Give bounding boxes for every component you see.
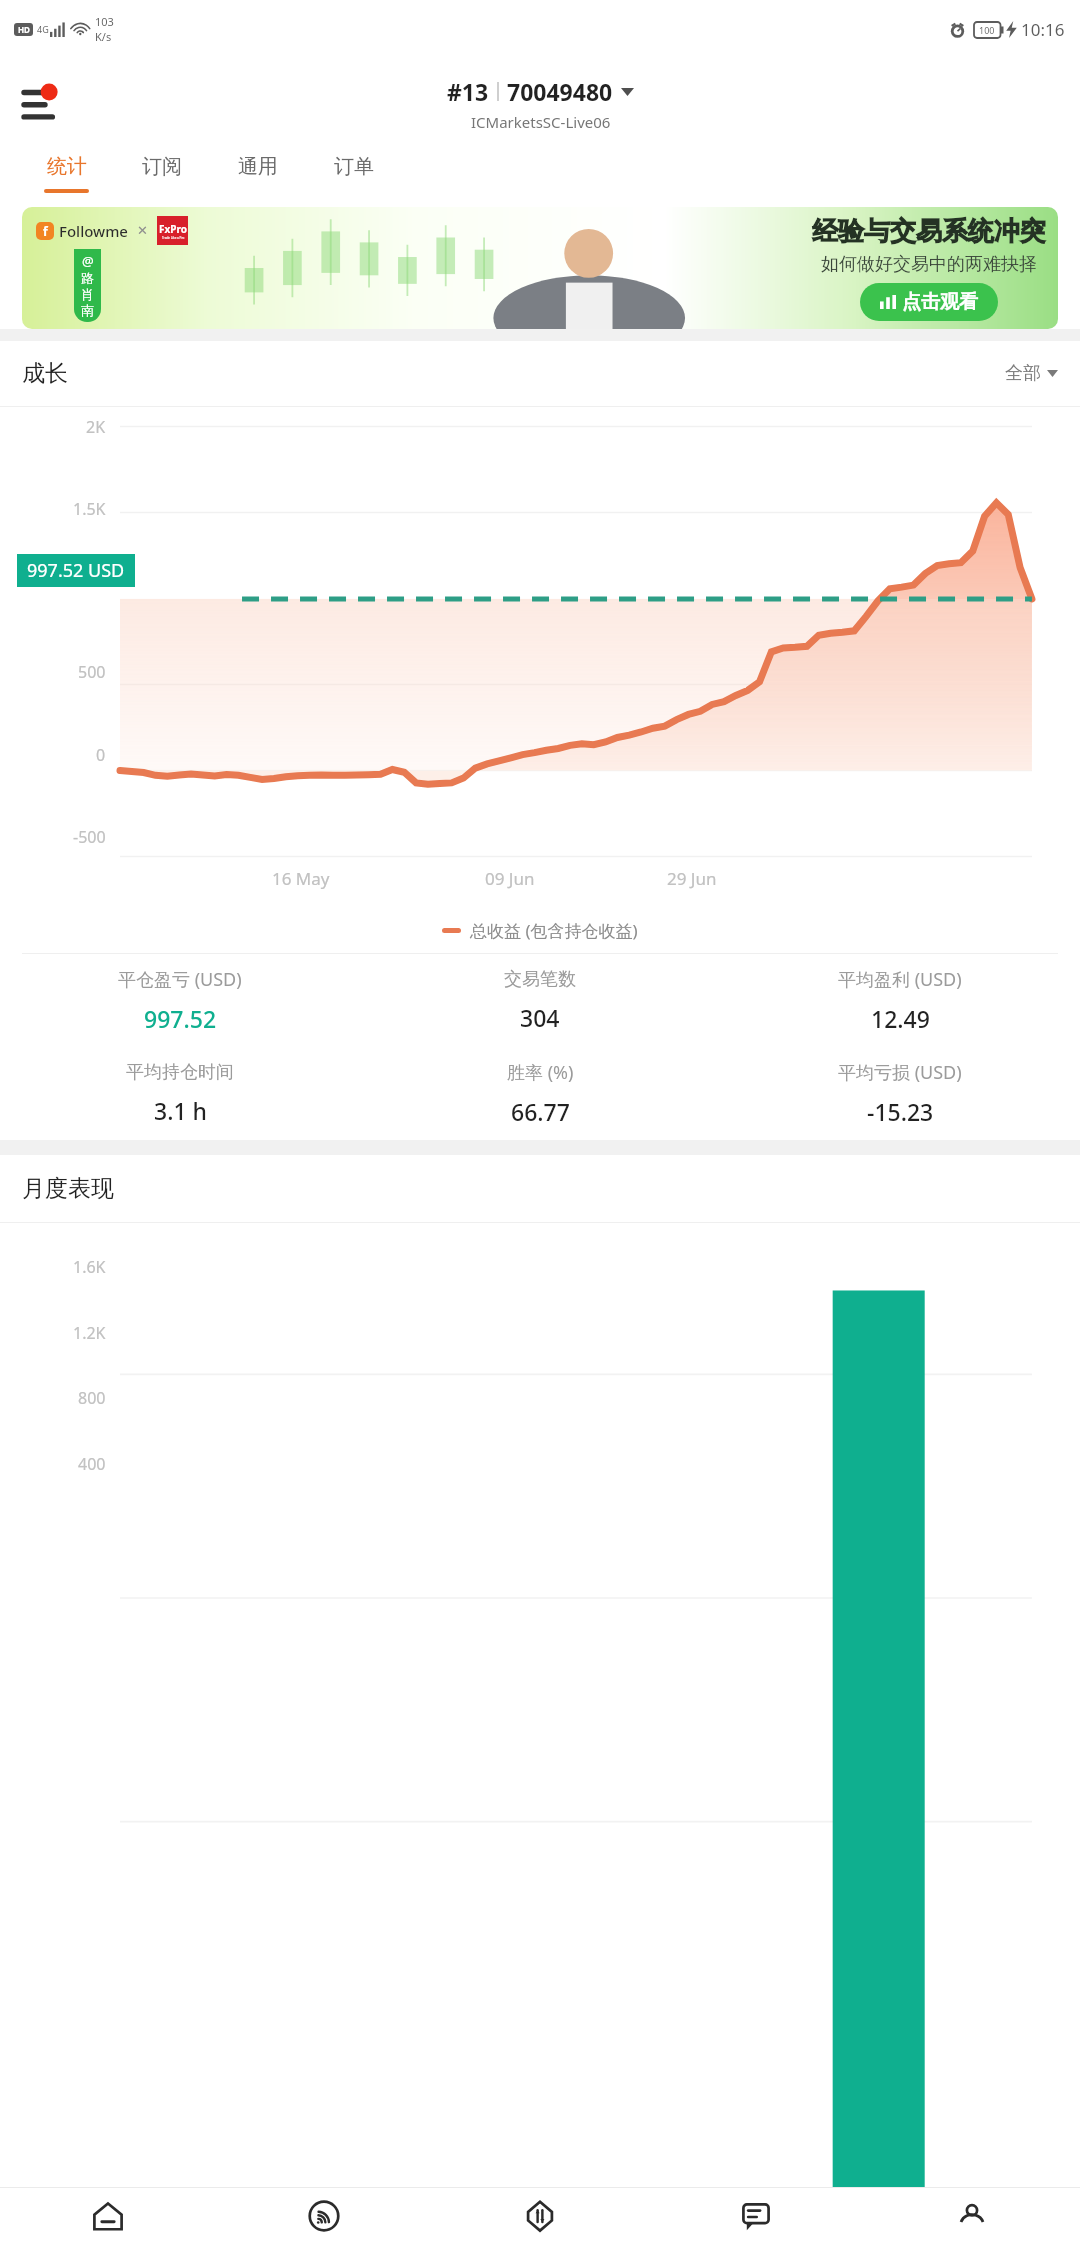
staticText: 订阅	[142, 154, 182, 179]
staticText: 500	[78, 661, 106, 683]
staticText: ✕	[137, 223, 148, 238]
staticText: -15.23	[867, 1096, 934, 1127]
staticText: 1.6K	[73, 1256, 106, 1278]
staticText: 29 Jun	[667, 867, 717, 890]
staticText: 800	[78, 1387, 106, 1409]
staticText: 3.1 h	[154, 1095, 207, 1126]
staticText: 肖	[81, 286, 94, 302]
button[interactable]: 统计	[18, 150, 114, 207]
staticText: 经验与交易系统冲突	[812, 215, 1046, 248]
staticText: 12.49	[871, 1003, 930, 1034]
staticText: 997.52 USD	[27, 558, 125, 583]
button[interactable]: Profile	[864, 2188, 1080, 2244]
button[interactable]: 通用	[210, 150, 306, 207]
staticText: 订单	[334, 154, 374, 179]
staticText: 平均盈利 (USD)	[838, 967, 962, 992]
staticText: #13	[447, 76, 489, 107]
staticText: 统计	[47, 154, 87, 179]
staticText: 点击观看	[902, 290, 978, 314]
staticText: 2K	[86, 416, 106, 438]
staticText: 100	[979, 24, 995, 36]
staticText: 如何做好交易中的两难抉择	[821, 253, 1037, 276]
staticText: 66.77	[511, 1096, 570, 1127]
button[interactable]: Trade	[432, 2188, 648, 2244]
staticText: Trade Like a Pro	[162, 236, 185, 240]
staticText: -500	[73, 826, 106, 848]
staticText: K/s	[95, 29, 112, 44]
staticText: 1.5K	[73, 498, 106, 520]
staticText: 70049480	[507, 76, 613, 107]
staticText: @	[82, 252, 94, 270]
staticText: 胜率 (%)	[507, 1060, 574, 1085]
staticText: 304	[520, 1002, 560, 1033]
button[interactable]: Account selector	[447, 76, 634, 107]
staticText: 0	[96, 744, 106, 766]
button[interactable]: Discover	[216, 2188, 432, 2244]
staticText: 10:16	[1021, 18, 1065, 41]
button[interactable]: 点击观看	[860, 283, 998, 321]
button[interactable]: Home	[0, 2188, 216, 2244]
staticText: 09 Jun	[485, 867, 535, 890]
button[interactable]: 订阅	[114, 150, 210, 207]
staticText: 总收益 (包含持仓收益)	[470, 919, 638, 942]
button[interactable]: 订单	[306, 150, 402, 207]
staticText: 平仓盈亏 (USD)	[118, 967, 242, 992]
staticText: 南	[81, 302, 94, 318]
staticText: 全部	[1005, 362, 1041, 385]
staticText: 103	[95, 14, 114, 29]
button[interactable]: f	[22, 207, 1058, 329]
staticText: 路	[81, 270, 94, 286]
staticText: f	[43, 223, 48, 239]
staticText: 16 May	[272, 867, 330, 890]
staticText: 平均亏损 (USD)	[838, 1060, 962, 1085]
staticText: FxPro	[159, 222, 187, 236]
staticText: Followme	[59, 221, 128, 241]
staticText: 通用	[238, 154, 278, 179]
staticText: 交易笔数	[504, 968, 576, 991]
button[interactable]: 全部	[1005, 362, 1058, 385]
button[interactable]: Menu	[14, 73, 76, 135]
staticText: 400	[78, 1453, 106, 1475]
staticText: HD	[18, 24, 30, 35]
staticText: 1.2K	[73, 1322, 106, 1344]
staticText: 平均持仓时间	[126, 1061, 234, 1084]
staticText: 997.52	[144, 1003, 217, 1034]
staticText: ICMarketsSC-Live06	[471, 112, 611, 132]
staticText: 月度表现	[22, 1174, 114, 1203]
staticText: 成长	[22, 359, 68, 388]
staticText: 4G	[37, 23, 49, 35]
button[interactable]: Messages	[648, 2188, 864, 2244]
